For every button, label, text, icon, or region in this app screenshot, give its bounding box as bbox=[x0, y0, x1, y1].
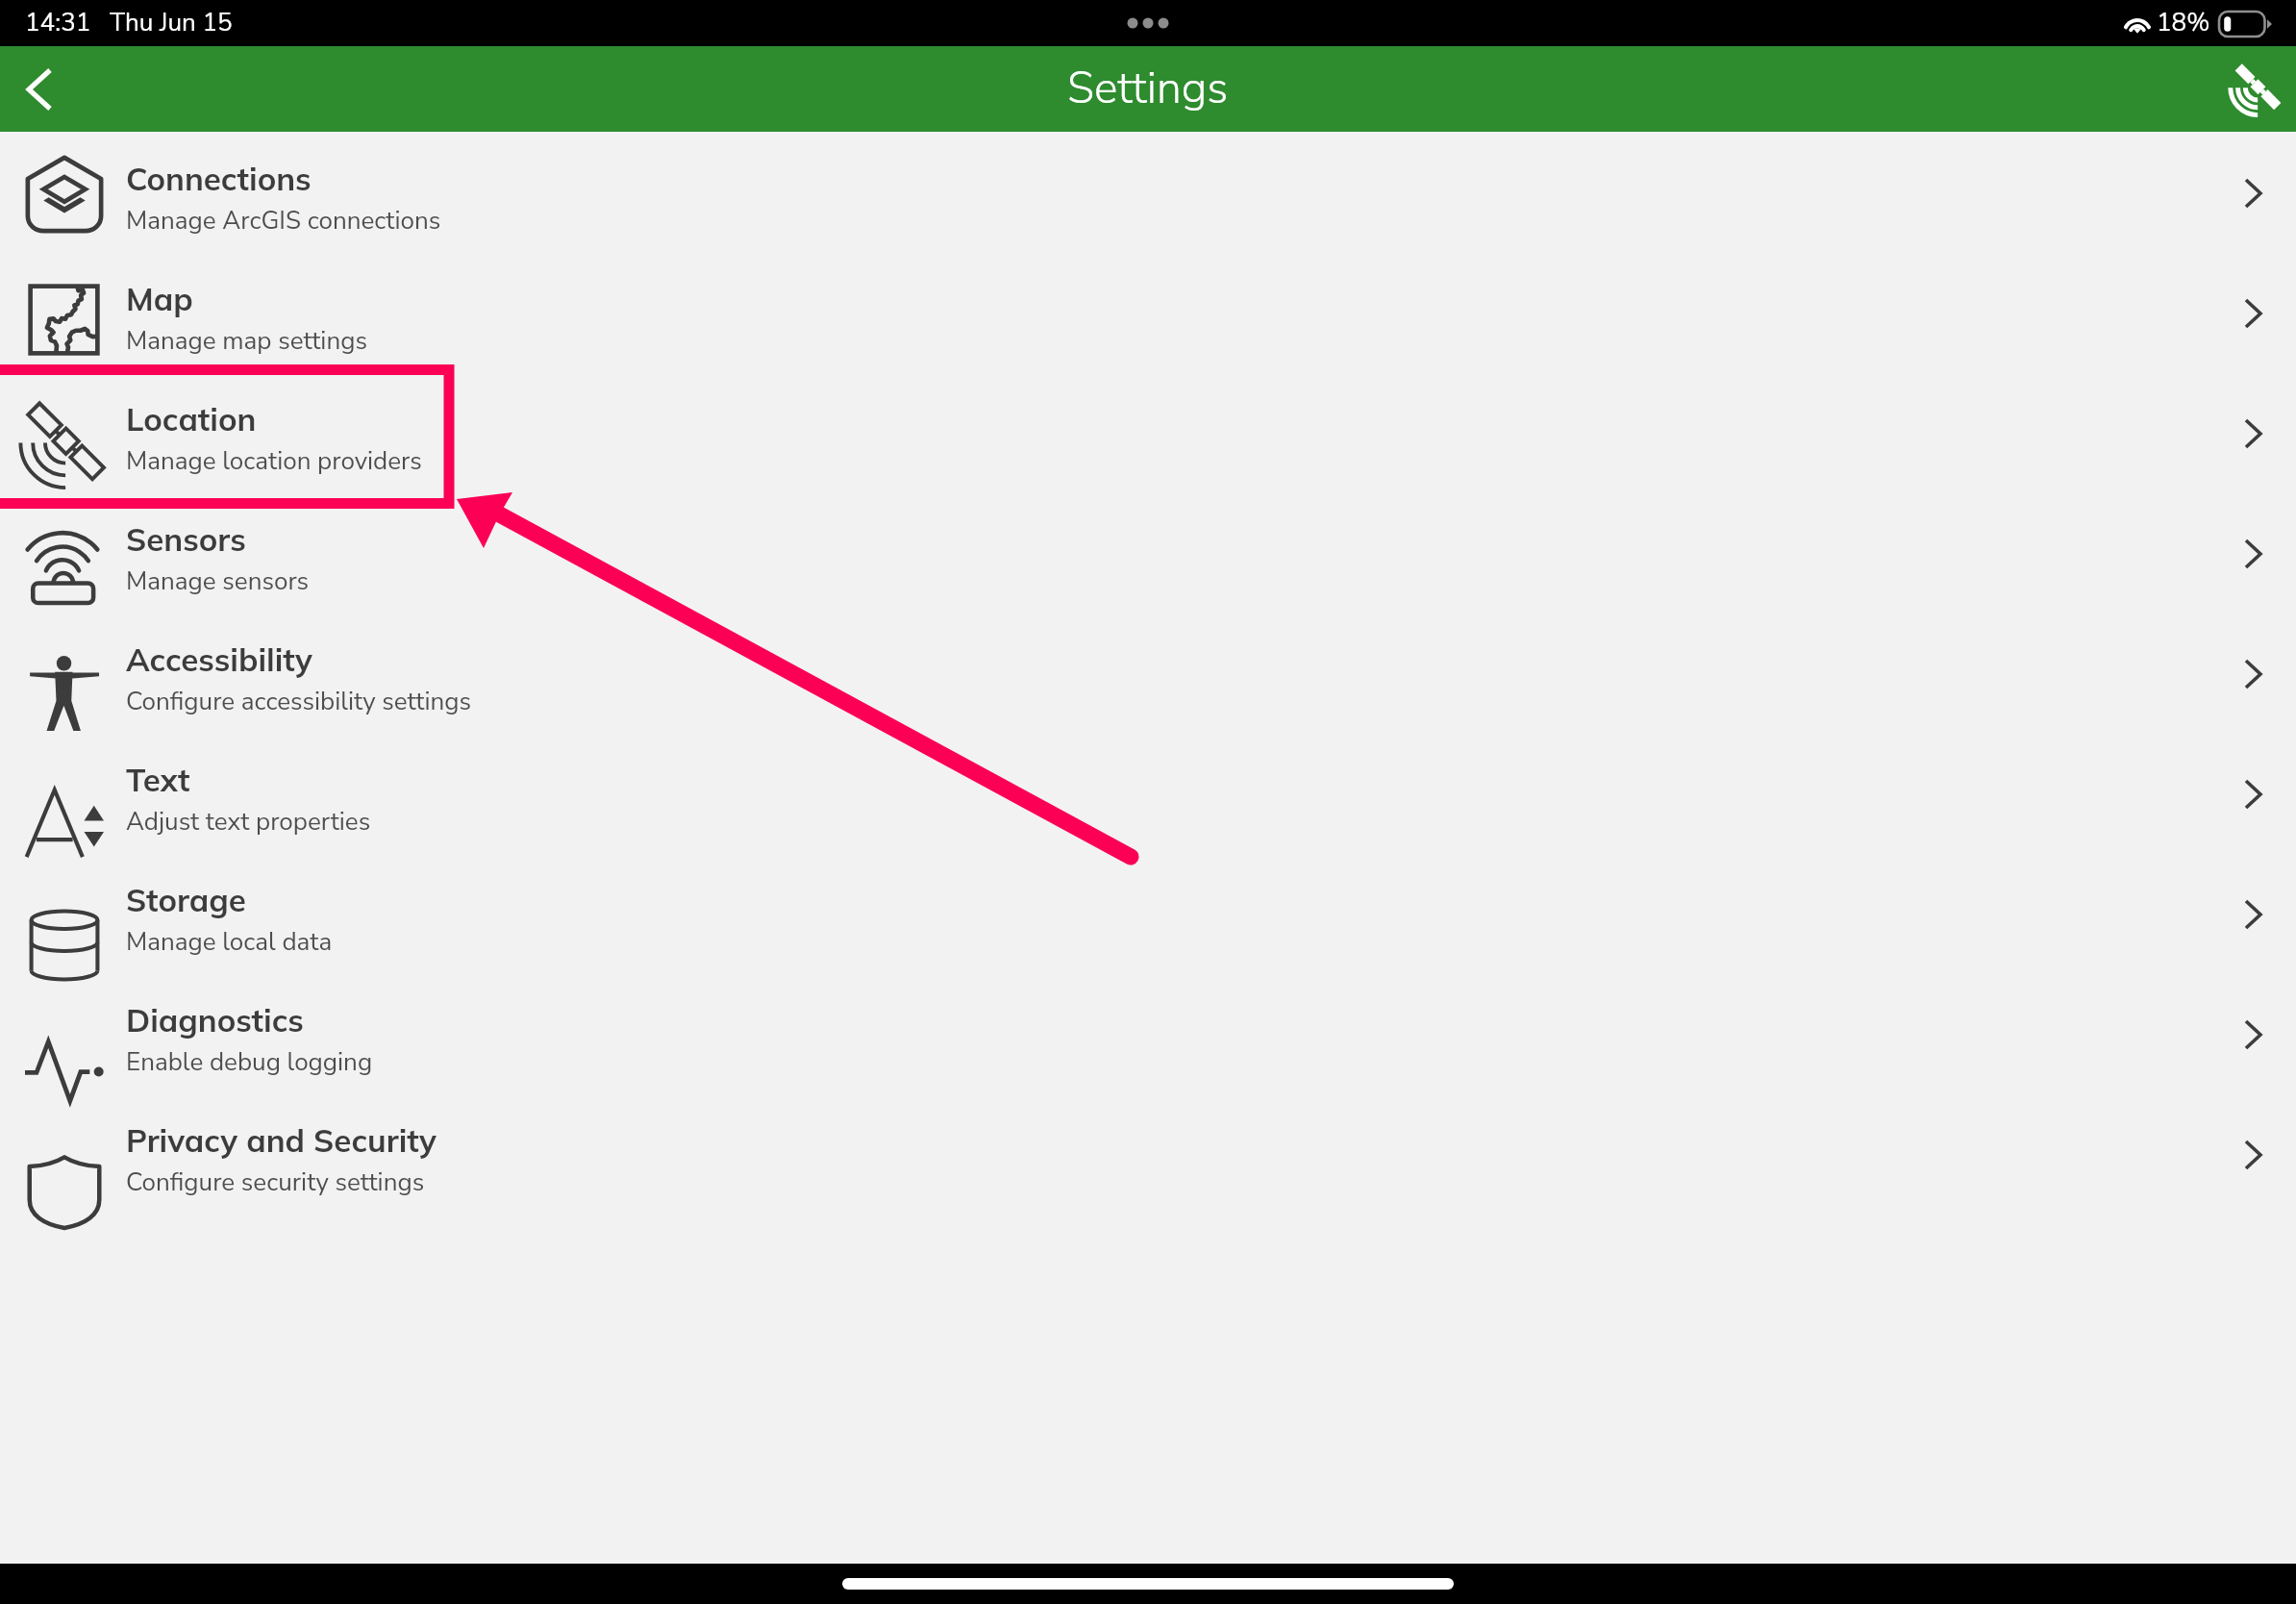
button[interactable]: GPS status bbox=[2190, 46, 2296, 132]
staticText: Configure accessibility settings bbox=[126, 685, 471, 718]
button[interactable]: Storage bbox=[0, 854, 2296, 974]
staticText: Adjust text properties bbox=[126, 805, 371, 839]
staticText: Manage location providers bbox=[126, 444, 422, 478]
staticText: Manage map settings bbox=[126, 324, 367, 358]
button[interactable]: Connections bbox=[0, 133, 2296, 253]
staticText: Manage local data bbox=[126, 925, 333, 959]
staticText: Configure security settings bbox=[126, 1165, 425, 1199]
staticText: 18% bbox=[2157, 6, 2210, 39]
staticText: Diagnostics bbox=[126, 1000, 304, 1040]
button[interactable]: Diagnostics bbox=[0, 974, 2296, 1094]
staticText: Connections bbox=[126, 159, 312, 198]
staticText: Storage bbox=[126, 880, 246, 919]
staticText: Sensors bbox=[126, 519, 246, 559]
button[interactable]: Accessibility bbox=[0, 614, 2296, 734]
staticText: Manage ArcGIS connections bbox=[126, 204, 441, 238]
staticText: 14:31 Thu Jun 15 bbox=[25, 6, 233, 39]
staticText: Map bbox=[126, 279, 193, 318]
staticText: Settings bbox=[1067, 58, 1229, 118]
staticText: Manage sensors bbox=[126, 564, 310, 598]
button[interactable]: Map bbox=[0, 253, 2296, 373]
staticText: Text bbox=[126, 760, 190, 799]
button[interactable]: Text bbox=[0, 734, 2296, 854]
staticText: Accessibility bbox=[126, 639, 312, 679]
button[interactable]: Privacy and Security bbox=[0, 1094, 2296, 1215]
button[interactable]: Location bbox=[0, 373, 2296, 493]
staticText: Enable debug logging bbox=[126, 1045, 373, 1079]
staticText: Location bbox=[126, 399, 257, 439]
staticText: Privacy and Security bbox=[126, 1120, 437, 1160]
button[interactable]: Back bbox=[0, 46, 81, 132]
button[interactable]: Sensors bbox=[0, 493, 2296, 614]
